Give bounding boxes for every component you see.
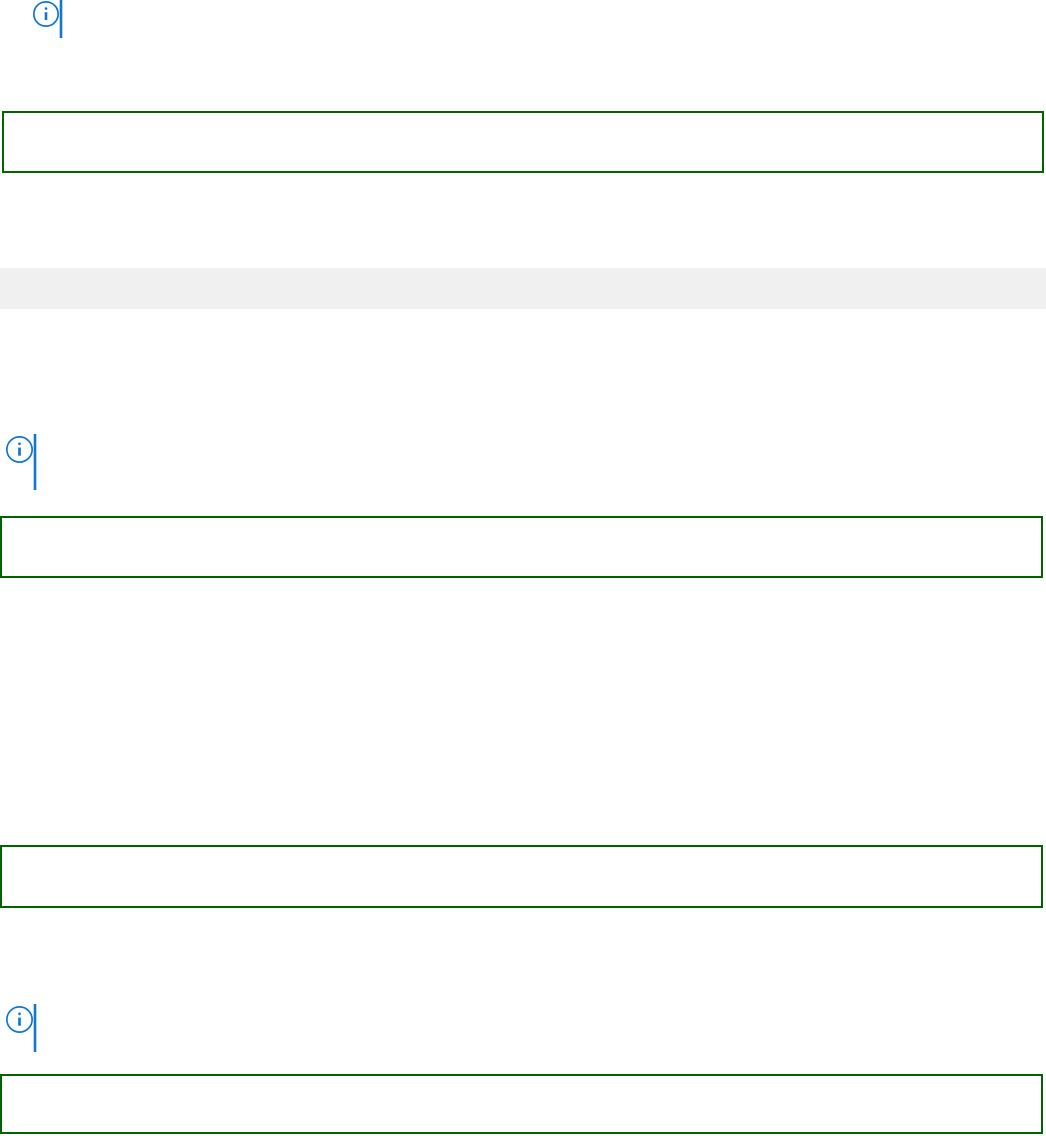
button[interactable]: Text entry field 1 — [2, 111, 1044, 173]
button[interactable]: More information — [6, 1006, 38, 1052]
button[interactable]: More information — [33, 1, 64, 38]
button[interactable]: More information — [6, 436, 38, 490]
button[interactable]: Text entry field 2 — [0, 516, 1043, 578]
button[interactable]: Text entry field 4 — [0, 1074, 1043, 1134]
button[interactable]: Text entry field 3 — [0, 845, 1043, 908]
